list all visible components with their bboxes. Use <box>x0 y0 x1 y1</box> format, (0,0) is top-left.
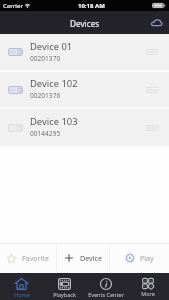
button[interactable]: Play <box>110 243 169 273</box>
staticText: Home <box>14 291 30 298</box>
staticText: 00201370 <box>30 54 61 63</box>
button[interactable]: Device 103 <box>0 109 169 146</box>
staticText: Device <box>80 253 102 263</box>
staticText: Devices <box>70 18 100 29</box>
staticText: 00144295 <box>30 129 61 138</box>
button[interactable]: Device <box>57 243 109 273</box>
staticText: 10:18 AM <box>78 2 105 10</box>
staticText: 00201376 <box>30 91 61 100</box>
button[interactable]: Favorite <box>0 243 56 273</box>
button[interactable]: Events Center <box>85 273 127 300</box>
button[interactable]: Playback <box>43 273 85 300</box>
button[interactable]: More options <box>144 81 160 99</box>
button[interactable]: Home <box>0 273 43 300</box>
staticText: More <box>141 290 155 297</box>
staticText: Device 102 <box>30 77 78 90</box>
staticText: Favorite <box>22 253 49 263</box>
staticText: Playback <box>53 291 76 298</box>
staticText: Device 103 <box>30 115 78 128</box>
button[interactable]: Device 102 <box>0 72 169 107</box>
staticText: Carrier <box>3 2 23 10</box>
button[interactable]: More options <box>144 119 160 137</box>
staticText: Play <box>140 253 154 263</box>
button[interactable]: More options <box>144 43 160 61</box>
staticText: Device 01 <box>30 40 73 53</box>
button[interactable]: Device 01 <box>0 34 169 70</box>
button[interactable]: Cloud <box>144 11 169 34</box>
staticText: Events Center <box>88 291 124 298</box>
button[interactable]: More <box>127 273 169 300</box>
